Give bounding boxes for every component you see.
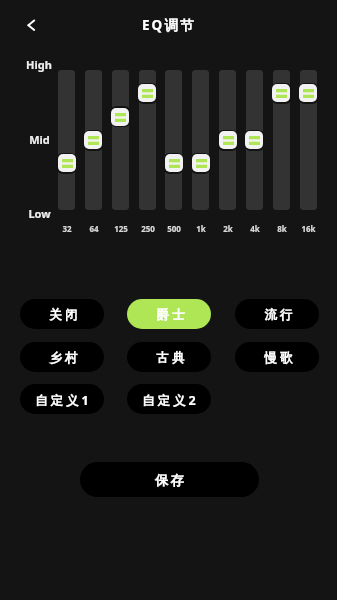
staticText: Low [28,206,51,221]
button[interactable]: Level 32 [58,154,76,172]
button[interactable]: Level 4k [245,131,263,149]
button[interactable]: Level 8k [272,84,290,102]
staticText: 4k [250,223,260,234]
button[interactable]: Band 64 [85,70,102,210]
staticText: 8k [277,223,287,234]
staticText: 125 [114,223,128,234]
button[interactable]: 保存 [80,462,259,497]
button[interactable]: 关闭 [20,299,104,329]
staticText: 古典 [155,350,186,366]
button[interactable]: Level 16k [299,84,317,102]
staticText: 慢歌 [263,350,294,366]
button[interactable]: Band 500 [165,70,182,210]
button[interactable]: Band 2k [219,70,236,210]
staticText: 乡村 [48,350,79,366]
button[interactable]: Level 250 [138,84,156,102]
button[interactable]: Level 1k [192,154,210,172]
button[interactable]: Level 64 [84,131,102,149]
staticText: 250 [141,223,155,234]
button[interactable]: Back [16,10,44,38]
staticText: 32 [62,223,72,234]
button[interactable]: 慢歌 [235,342,319,372]
button[interactable]: Level 2k [219,131,237,149]
button[interactable]: 乡村 [20,342,104,372]
staticText: Mid [29,132,50,147]
staticText: 关闭 [48,307,79,323]
staticText: 保存 [154,472,185,489]
staticText: 流行 [263,307,294,323]
button[interactable]: Band 125 [112,70,129,210]
button[interactable]: Level 500 [165,154,183,172]
button[interactable]: Band 250 [139,70,156,210]
staticText: 500 [167,223,181,234]
staticText: EQ调节 [142,16,196,34]
button[interactable]: Band 1k [192,70,209,210]
button[interactable]: Band 32 [58,70,75,210]
button[interactable]: Band 8k [273,70,290,210]
button[interactable]: 自定义2 [127,384,211,414]
staticText: 64 [89,223,99,234]
button[interactable]: Band 16k [300,70,317,210]
staticText: 爵士 [155,307,186,323]
button[interactable]: 自定义1 [20,384,104,414]
staticText: 2k [223,223,233,234]
staticText: High [26,57,52,72]
staticText: 1k [196,223,206,234]
staticText: 16k [301,223,316,234]
staticText: 自定义1 [35,392,92,409]
button[interactable]: 古典 [127,342,211,372]
staticText: 自定义2 [142,392,199,409]
button[interactable]: Band 4k [246,70,263,210]
button[interactable]: 流行 [235,299,319,329]
button[interactable]: 爵士 [127,299,211,329]
button[interactable]: Level 125 [111,108,129,126]
